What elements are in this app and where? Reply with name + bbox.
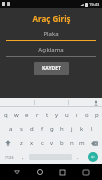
button[interactable]: Voice input bbox=[93, 100, 99, 106]
button[interactable]: w bbox=[11, 107, 22, 122]
button[interactable]: Back bbox=[5, 164, 28, 180]
button[interactable] bbox=[0, 98, 34, 107]
staticText: . bbox=[77, 153, 79, 161]
staticText: x bbox=[30, 139, 34, 147]
staticText: s bbox=[20, 125, 23, 133]
button[interactable]: g bbox=[47, 122, 57, 136]
button[interactable]: Recents bbox=[51, 164, 74, 180]
staticText: b bbox=[60, 139, 64, 147]
button[interactable]: r bbox=[32, 107, 42, 122]
staticText: d bbox=[30, 125, 34, 133]
button[interactable]: Backspace bbox=[87, 136, 102, 150]
button[interactable]: KAYDET bbox=[34, 62, 69, 75]
button[interactable]: , bbox=[18, 150, 28, 164]
button[interactable]: Plaka bbox=[6, 30, 96, 41]
button[interactable]: c bbox=[37, 136, 47, 150]
button[interactable]: b bbox=[57, 136, 67, 150]
staticText: o bbox=[85, 111, 89, 119]
staticText: v bbox=[50, 139, 54, 147]
staticText: t bbox=[46, 111, 49, 119]
button[interactable]: n bbox=[67, 136, 77, 150]
staticText: Açıklama bbox=[38, 46, 64, 54]
button[interactable]: z bbox=[16, 136, 27, 150]
staticText: a bbox=[9, 125, 13, 133]
staticText: h bbox=[60, 125, 64, 133]
staticText: z bbox=[20, 139, 23, 147]
button[interactable]: a bbox=[5, 122, 16, 136]
button[interactable]: Enter bbox=[88, 152, 98, 162]
button[interactable] bbox=[34, 98, 68, 107]
button[interactable]: Home bbox=[28, 164, 51, 180]
staticText: 19:43 bbox=[89, 2, 100, 7]
staticText: l bbox=[91, 125, 93, 133]
staticText: n bbox=[70, 139, 74, 147]
button[interactable]: ?123 bbox=[0, 150, 18, 164]
button[interactable]: y bbox=[52, 107, 62, 122]
staticText: Plaka bbox=[43, 30, 59, 38]
staticText: q bbox=[4, 111, 8, 119]
button[interactable]: Hide keyboard bbox=[74, 164, 97, 180]
staticText: Araç Giriş bbox=[32, 13, 71, 24]
button[interactable]: u bbox=[62, 107, 72, 122]
button[interactable]: h bbox=[57, 122, 67, 136]
staticText: KAYDET bbox=[42, 65, 61, 72]
button[interactable]: f bbox=[37, 122, 47, 136]
staticText: ?123 bbox=[5, 155, 14, 160]
button[interactable]: m bbox=[77, 136, 87, 150]
button[interactable]: . bbox=[73, 150, 83, 164]
staticText: r bbox=[36, 111, 39, 119]
button[interactable]: Shift bbox=[0, 136, 16, 150]
staticText: e bbox=[25, 111, 29, 119]
staticText: u bbox=[65, 111, 69, 119]
button[interactable]: k bbox=[77, 122, 87, 136]
button[interactable]: l bbox=[87, 122, 97, 136]
button[interactable]: v bbox=[47, 136, 57, 150]
staticText: y bbox=[55, 111, 59, 119]
button[interactable]: x bbox=[27, 136, 37, 150]
button[interactable]: o bbox=[82, 107, 92, 122]
staticText: f bbox=[41, 125, 44, 133]
staticText: c bbox=[41, 139, 44, 147]
staticText: , bbox=[22, 153, 24, 161]
staticText: ı bbox=[76, 111, 78, 119]
button[interactable]: s bbox=[16, 122, 27, 136]
button[interactable]: ı bbox=[72, 107, 82, 122]
button[interactable]: t bbox=[42, 107, 52, 122]
button[interactable] bbox=[68, 98, 102, 107]
button[interactable]: Açıklama bbox=[6, 46, 96, 57]
button[interactable]: q bbox=[0, 107, 11, 122]
staticText: w bbox=[14, 111, 19, 119]
button[interactable]: d bbox=[27, 122, 37, 136]
staticText: j bbox=[71, 125, 73, 133]
button[interactable]: p bbox=[92, 107, 102, 122]
staticText: p bbox=[95, 111, 99, 119]
button[interactable]: e bbox=[22, 107, 32, 122]
button[interactable]: j bbox=[67, 122, 77, 136]
staticText: g bbox=[50, 125, 54, 133]
staticText: m bbox=[79, 139, 85, 147]
staticText: k bbox=[80, 125, 84, 133]
